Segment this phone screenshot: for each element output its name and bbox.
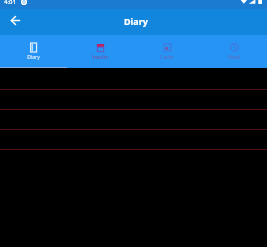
button[interactable]: Insulin: [66, 35, 133, 68]
button[interactable]: Back: [4, 9, 27, 32]
button[interactable]: Carbs: [133, 35, 200, 68]
staticText: Meal: [228, 54, 240, 61]
staticText: Diary: [124, 15, 148, 27]
button[interactable]: Meal: [200, 35, 267, 68]
staticText: Diary: [27, 54, 40, 61]
staticText: 4:01: [4, 0, 16, 6]
staticText: Insulin: [92, 54, 108, 61]
button[interactable]: Diary: [0, 35, 66, 68]
staticText: Carbs: [160, 54, 174, 61]
